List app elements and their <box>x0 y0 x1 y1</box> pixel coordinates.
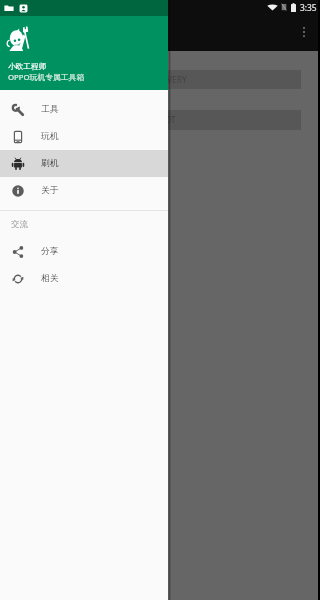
staticText: 关于 <box>41 185 59 196</box>
button[interactable]: More options <box>293 21 315 43</box>
staticText: OPPO玩机专属工具箱 <box>8 72 85 83</box>
button[interactable]: 关于 <box>0 177 168 204</box>
staticText: 进入 FASTBOOT <box>114 114 176 126</box>
staticText: 相关 <box>41 273 59 284</box>
button[interactable]: 玩机 <box>0 123 168 150</box>
staticText: 玩机 <box>41 131 59 142</box>
staticText: 交流 <box>11 219 28 230</box>
staticText: 分享 <box>41 246 59 257</box>
staticText: 3:35 <box>300 2 317 13</box>
staticText: 小欧工程师 <box>8 62 46 72</box>
button[interactable]: 刷机 <box>0 150 168 177</box>
button[interactable]: 相关 <box>0 265 168 292</box>
staticText: 刷机 <box>41 158 59 169</box>
button[interactable]: 分享 <box>0 238 168 265</box>
staticText: 工具 <box>41 104 59 115</box>
button[interactable]: 工具 <box>0 96 168 123</box>
staticText: 进入 RECOVERY <box>126 74 187 86</box>
